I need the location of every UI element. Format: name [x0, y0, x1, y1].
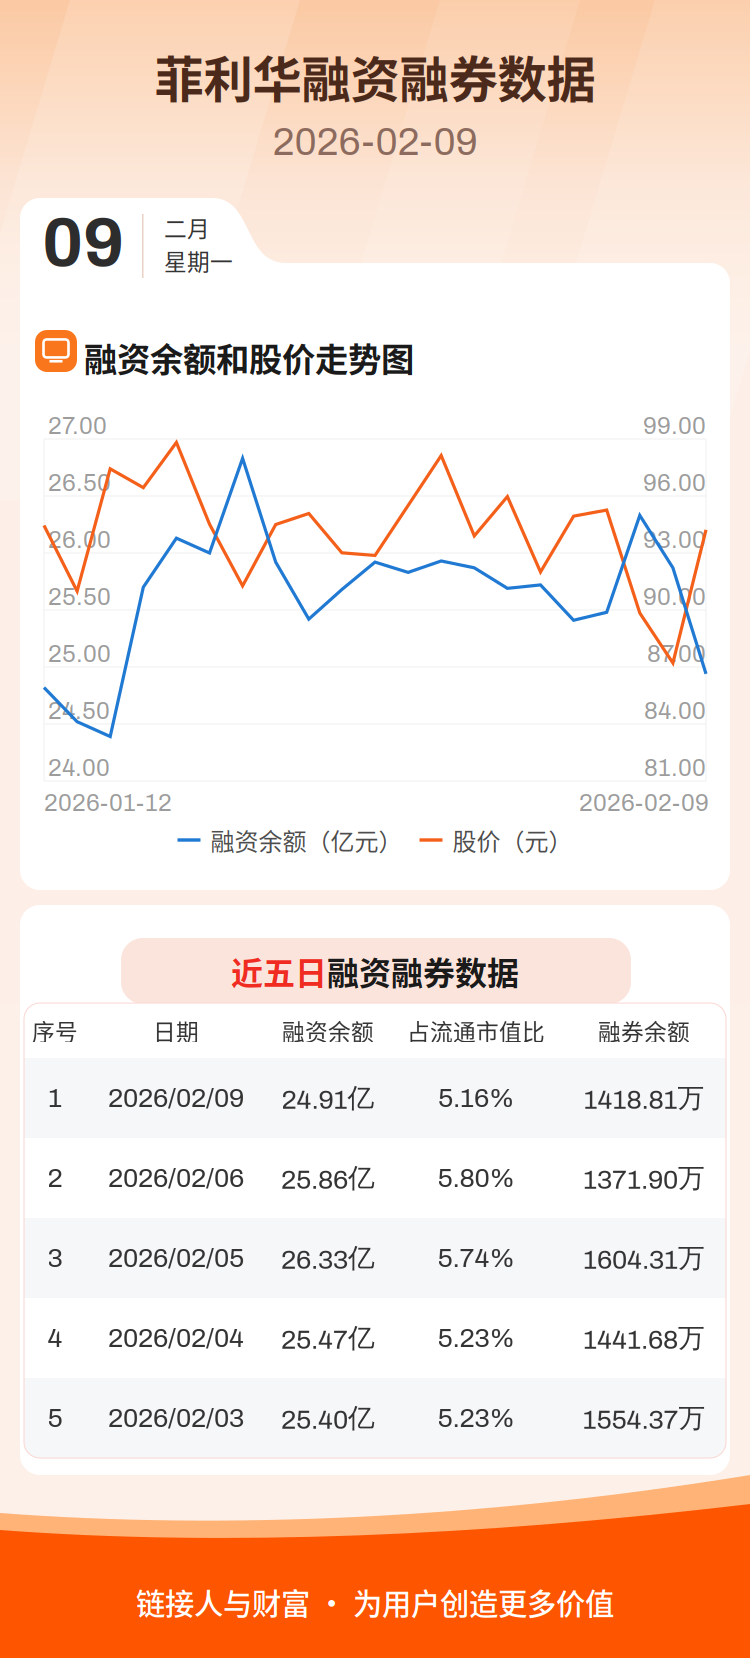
staticText: 2026/02/09 — [108, 1083, 244, 1112]
staticText: 链接人与财富 · 为用户创造更多价值 — [136, 1581, 614, 1623]
staticText: 09 — [42, 205, 124, 280]
staticText: 融资余额（亿元） — [210, 823, 402, 857]
staticText: 2026/02/06 — [108, 1163, 244, 1192]
staticText: 2026/02/04 — [108, 1323, 244, 1352]
staticText: 87.00 — [647, 641, 706, 667]
staticText: 27.00 — [48, 413, 107, 439]
staticText: 2026-02-09 — [579, 790, 709, 816]
staticText: 2026/02/03 — [108, 1403, 244, 1432]
staticText: 5.74% — [437, 1243, 514, 1272]
staticText: 26.00 — [48, 527, 111, 553]
staticText: 融资融券数据 — [327, 948, 519, 994]
staticText: 1 — [48, 1083, 62, 1112]
staticText: 菲利华融资融券数据 — [154, 40, 595, 112]
staticText: 25.40亿 — [281, 1401, 375, 1435]
staticText: 2026-02-09 — [272, 121, 477, 163]
staticText: 25.86亿 — [281, 1161, 375, 1195]
staticText: 81.00 — [644, 755, 706, 781]
staticText: 股价（元） — [452, 823, 572, 857]
staticText: 90.00 — [643, 584, 706, 610]
staticText: 4 — [47, 1323, 62, 1352]
staticText: 5.80% — [437, 1163, 514, 1192]
staticText: 5 — [47, 1403, 62, 1432]
staticText: 融资余额和股价走势图 — [84, 333, 414, 381]
staticText: 日期 — [153, 1014, 199, 1047]
staticText: 序号 — [32, 1014, 78, 1047]
staticText: 26.50 — [48, 470, 111, 496]
staticText: 24.91亿 — [281, 1081, 374, 1115]
staticText: 1441.68万 — [583, 1321, 705, 1355]
staticText: 融资余额 — [282, 1014, 374, 1047]
staticText: 96.00 — [643, 470, 706, 496]
staticText: 星期一 — [164, 244, 233, 277]
staticText: 25.00 — [48, 641, 111, 667]
staticText: 占流通市值比 — [407, 1014, 545, 1047]
staticText: 二月 — [164, 211, 210, 244]
staticText: 26.33亿 — [281, 1241, 375, 1275]
staticText: 5.16% — [438, 1083, 514, 1112]
staticText: 2 — [47, 1163, 62, 1192]
staticText: 24.50 — [48, 698, 110, 724]
staticText: 1418.81万 — [583, 1081, 704, 1115]
staticText: 1371.90万 — [583, 1161, 705, 1195]
staticText: 25.47亿 — [281, 1321, 375, 1355]
staticText: 近五日 — [231, 948, 327, 994]
staticText: 3 — [47, 1243, 62, 1272]
staticText: 2026-01-12 — [44, 790, 172, 816]
staticText: 5.23% — [437, 1323, 514, 1352]
staticText: 5.23% — [437, 1403, 514, 1432]
staticText: 25.50 — [48, 584, 111, 610]
staticText: 2026/02/05 — [108, 1243, 244, 1272]
staticText: 84.00 — [644, 698, 706, 724]
staticText: 1604.31万 — [583, 1241, 705, 1275]
staticText: 1554.37万 — [582, 1401, 705, 1435]
staticText: 融券余额 — [598, 1014, 690, 1047]
staticText: 99.00 — [643, 413, 706, 439]
staticText: 93.00 — [643, 527, 706, 553]
staticText: 24.00 — [48, 755, 110, 781]
